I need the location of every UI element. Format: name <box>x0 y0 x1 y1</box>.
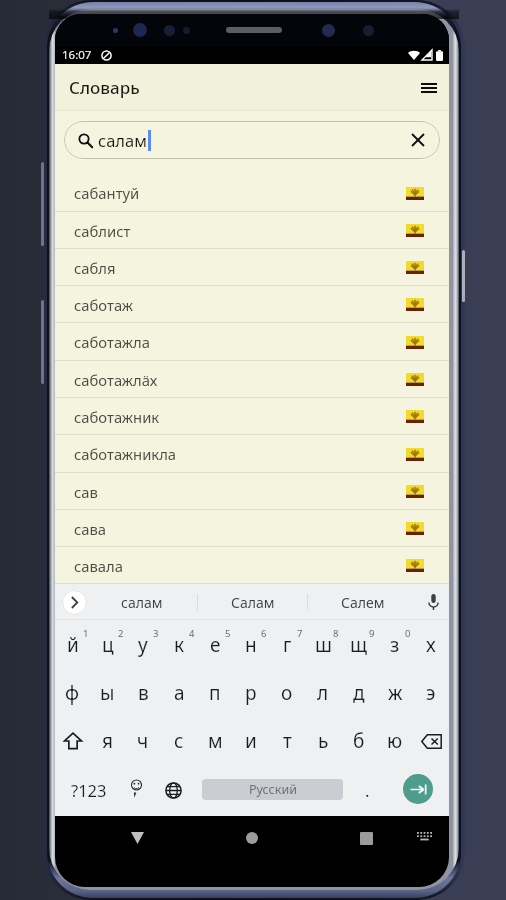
button[interactable]: ч <box>125 717 161 765</box>
staticText: р <box>245 680 257 706</box>
staticText: Салем <box>341 593 385 612</box>
button[interactable]: саблист <box>55 212 449 249</box>
staticText: саботажлӓх <box>74 370 158 390</box>
staticText: я <box>102 728 113 754</box>
button[interactable]: Menu <box>411 70 447 106</box>
button[interactable]: ю <box>377 717 413 765</box>
button[interactable]: у <box>125 620 161 669</box>
button[interactable]: саботаж <box>55 286 449 323</box>
button[interactable]: ?123 <box>61 769 116 811</box>
button[interactable]: Backspace <box>413 717 449 765</box>
staticText: в <box>138 680 149 706</box>
button[interactable]: саботажникла <box>55 435 449 473</box>
button[interactable]: о <box>269 669 305 717</box>
button[interactable]: Home <box>226 817 278 859</box>
button[interactable]: с <box>161 717 197 765</box>
staticText: ф <box>65 680 80 706</box>
button[interactable]: Салам <box>198 584 307 620</box>
staticText: м <box>208 728 223 754</box>
button[interactable]: Clear search <box>406 128 430 152</box>
staticText: 6 <box>261 627 267 640</box>
button[interactable]: а <box>161 669 197 717</box>
button[interactable]: х <box>413 620 449 669</box>
staticText: э <box>426 680 436 706</box>
button[interactable]: т <box>269 717 305 765</box>
staticText: сава <box>74 519 107 539</box>
button[interactable]: саботажлӓх <box>55 361 449 398</box>
staticText: 0 <box>405 627 411 640</box>
button[interactable]: й <box>55 620 90 669</box>
button[interactable]: э <box>413 669 449 717</box>
staticText: и <box>245 728 257 754</box>
button[interactable]: к <box>161 620 197 669</box>
staticText: сав <box>74 482 98 502</box>
staticText: сабля <box>74 258 116 278</box>
staticText: ы <box>100 680 115 706</box>
staticText: 3 <box>153 627 159 640</box>
staticText: Салам <box>231 593 275 612</box>
button[interactable]: д <box>341 669 377 717</box>
button[interactable]: Shift <box>55 717 90 765</box>
staticText: 1 <box>83 627 89 640</box>
staticText: л <box>317 680 329 706</box>
button[interactable]: More suggestions <box>62 590 87 615</box>
staticText: ч <box>137 728 149 754</box>
button[interactable]: ы <box>90 669 125 717</box>
staticText: у <box>138 632 148 658</box>
staticText: г <box>283 632 292 658</box>
button[interactable]: . <box>350 769 384 811</box>
button[interactable]: Русский <box>202 779 343 800</box>
button[interactable]: Change language <box>152 769 194 811</box>
button[interactable]: м <box>197 717 233 765</box>
staticText: ж <box>388 680 403 706</box>
button[interactable]: ь <box>305 717 341 765</box>
button[interactable]: саботажла <box>55 323 449 361</box>
staticText: салам <box>98 129 147 151</box>
staticText: 4 <box>189 627 195 640</box>
staticText: 16:07 <box>62 47 92 63</box>
button[interactable]: ш <box>305 620 341 669</box>
staticText: саблист <box>74 221 131 241</box>
button[interactable]: Enter <box>403 774 433 804</box>
button[interactable]: сабантуй <box>55 174 449 212</box>
button[interactable]: з <box>377 620 413 669</box>
staticText: . <box>365 779 370 802</box>
staticText: н <box>245 632 257 658</box>
button[interactable]: сав <box>55 473 449 510</box>
button[interactable]: р <box>233 669 269 717</box>
button[interactable]: салам <box>87 584 197 620</box>
staticText: саботажник <box>74 407 160 427</box>
button[interactable]: саботажник <box>55 398 449 435</box>
button[interactable]: ф <box>55 669 90 717</box>
button[interactable]: ж <box>377 669 413 717</box>
button[interactable]: ц <box>90 620 125 669</box>
button[interactable]: сава <box>55 510 449 547</box>
button[interactable]: Салем <box>308 584 417 620</box>
button[interactable]: я <box>90 717 125 765</box>
button[interactable]: сабля <box>55 249 449 286</box>
button[interactable]: б <box>341 717 377 765</box>
button[interactable]: савала <box>55 547 449 584</box>
staticText: 5 <box>225 627 231 640</box>
button[interactable]: Hide keyboard <box>404 817 444 857</box>
staticText: савала <box>74 556 124 576</box>
button[interactable]: е <box>197 620 233 669</box>
staticText: е <box>210 632 221 658</box>
button[interactable]: и <box>233 717 269 765</box>
button[interactable]: в <box>125 669 161 717</box>
button[interactable]: салам <box>64 121 440 159</box>
staticText: саботаж <box>74 295 134 315</box>
button[interactable]: Back <box>111 817 163 859</box>
button[interactable]: н <box>233 620 269 669</box>
button[interactable]: щ <box>341 620 377 669</box>
button[interactable]: л <box>305 669 341 717</box>
staticText: салам <box>121 593 163 612</box>
staticText: ю <box>387 728 403 754</box>
button[interactable]: Voice input <box>417 584 449 620</box>
button[interactable]: Emoji <box>116 769 158 811</box>
button[interactable]: Recent apps <box>340 817 392 859</box>
button[interactable]: п <box>197 669 233 717</box>
button[interactable]: г <box>269 620 305 669</box>
staticText: а <box>174 680 185 706</box>
staticText: саботажникла <box>74 444 177 464</box>
